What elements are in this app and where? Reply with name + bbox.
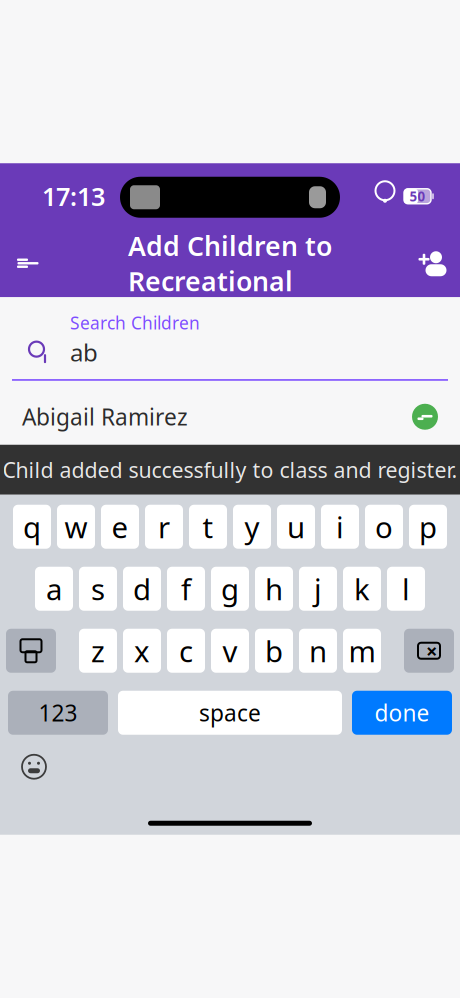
staticText: ab xyxy=(70,336,98,368)
staticText: Child added successfully to class and re… xyxy=(2,456,457,484)
button[interactable]: Delete xyxy=(404,629,454,673)
staticText: r xyxy=(158,507,170,546)
button[interactable]: z xyxy=(79,629,117,673)
button[interactable]: f xyxy=(167,567,205,611)
staticText: a xyxy=(46,569,62,608)
button[interactable]: t xyxy=(189,505,227,549)
button[interactable]: n xyxy=(299,629,337,673)
button[interactable]: w xyxy=(57,505,95,549)
staticText: s xyxy=(91,569,105,608)
staticText: space xyxy=(199,698,261,728)
button[interactable]: g xyxy=(211,567,249,611)
staticText: 50 xyxy=(409,187,425,205)
button[interactable]: p xyxy=(409,505,447,549)
button[interactable]: b xyxy=(255,629,293,673)
staticText: e xyxy=(111,507,128,546)
button[interactable]: u xyxy=(277,505,315,549)
staticText: q xyxy=(23,507,41,546)
button[interactable]: 123 xyxy=(8,691,108,735)
staticText: n xyxy=(309,631,327,670)
staticText: d xyxy=(133,569,151,608)
button[interactable]: h xyxy=(255,567,293,611)
staticText: g xyxy=(221,569,239,608)
staticText: 17:13 xyxy=(42,179,105,213)
button[interactable]: l xyxy=(387,567,425,611)
button[interactable]: Abigail Ramirez xyxy=(0,389,460,445)
button[interactable]: y xyxy=(233,505,271,549)
staticText: l xyxy=(402,569,410,608)
button[interactable]: v xyxy=(211,629,249,673)
button[interactable]: j xyxy=(299,567,337,611)
staticText: m xyxy=(348,631,375,670)
staticText: k xyxy=(354,569,370,608)
staticText: t xyxy=(202,507,213,546)
button[interactable]: r xyxy=(145,505,183,549)
button[interactable]: Shift xyxy=(6,629,56,673)
staticText: j xyxy=(314,569,322,608)
staticText: Add Children to Recreational xyxy=(128,228,332,299)
button[interactable]: k xyxy=(343,567,381,611)
staticText: done xyxy=(374,698,429,728)
staticText: f xyxy=(181,569,191,608)
button[interactable]: c xyxy=(167,629,205,673)
button[interactable]: s xyxy=(79,567,117,611)
staticText: w xyxy=(64,507,87,546)
staticText: x xyxy=(134,631,150,670)
staticText: b xyxy=(265,631,283,670)
staticText: u xyxy=(287,507,305,546)
staticText: 123 xyxy=(38,698,77,728)
button[interactable]: Add child xyxy=(404,235,460,291)
staticText: Search Children xyxy=(70,311,200,334)
button[interactable]: space xyxy=(118,691,342,735)
button[interactable]: Back xyxy=(0,235,56,291)
button[interactable]: Emoji xyxy=(12,747,56,787)
staticText: Abigail Ramirez xyxy=(22,402,188,432)
staticText: h xyxy=(265,569,283,608)
button[interactable]: q xyxy=(13,505,51,549)
staticText: y xyxy=(244,507,259,546)
button[interactable]: a xyxy=(35,567,73,611)
button[interactable]: done xyxy=(352,691,452,735)
staticText: z xyxy=(91,631,105,670)
button[interactable]: d xyxy=(123,567,161,611)
button[interactable]: i xyxy=(321,505,359,549)
staticText: × xyxy=(426,637,437,664)
staticText: v xyxy=(222,631,237,670)
staticText: p xyxy=(419,507,437,546)
staticText: c xyxy=(179,631,193,670)
staticText: o xyxy=(375,507,393,546)
staticText: i xyxy=(336,507,344,546)
button[interactable]: x xyxy=(123,629,161,673)
button[interactable]: m xyxy=(343,629,381,673)
button[interactable]: o xyxy=(365,505,403,549)
button[interactable]: e xyxy=(101,505,139,549)
